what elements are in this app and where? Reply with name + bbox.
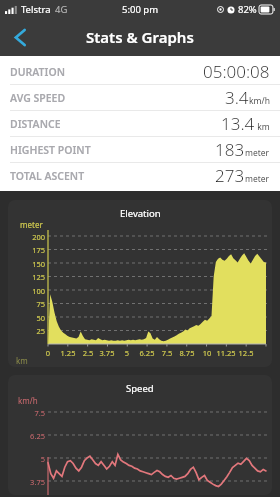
staticText: 82% [238,3,257,16]
staticText: DURATION [10,65,66,79]
button[interactable]: TOTAL ASCENT [0,163,280,188]
staticText: 8.75 [176,348,198,358]
staticText: 12.5 [235,348,257,358]
button[interactable]: Back [0,18,40,56]
staticText: 3.75 [14,477,45,487]
staticText: 25 [14,326,45,336]
staticText: 125 [14,272,45,282]
staticText: 6.25 [14,431,45,441]
staticText: meter [245,173,270,185]
button[interactable]: Elevation [8,200,272,367]
staticText: 150 [14,259,45,269]
staticText: Speed [126,382,154,395]
staticText: km/h [249,95,270,107]
staticText: HIGHEST POINT [10,143,91,157]
staticText: DISTANCE [10,117,61,131]
button[interactable]: DISTANCE [0,111,280,136]
staticText: 5 [14,454,45,464]
staticText: Stats & Graphs [86,27,194,47]
staticText: Elevation [120,207,161,220]
staticText: 11.25 [215,348,237,358]
staticText: km [255,121,270,133]
staticText: 3.75 [96,348,118,358]
staticText: 5 [116,348,138,358]
button[interactable]: HIGHEST POINT [0,137,280,162]
staticText: 0 [37,348,59,358]
button[interactable]: AVG SPEED [0,85,280,110]
staticText: 5:00 pm [122,3,159,16]
staticText: 6.25 [136,348,158,358]
staticText: km [16,355,28,366]
staticText: meter [245,147,270,159]
staticText: 175 [14,245,45,255]
staticText: Telstra [21,3,51,16]
staticText: meter [20,219,43,230]
staticText: km/h [18,395,38,406]
staticText: 3.4 [225,86,249,109]
staticText: 13.4 [221,112,255,135]
staticText: AVG SPEED [10,91,66,105]
staticText: 200 [14,232,45,242]
staticText: 10 [196,348,218,358]
staticText: 100 [14,286,45,296]
button[interactable]: DURATION [0,59,280,84]
button[interactable]: Speed [8,375,272,495]
staticText: TOTAL ASCENT [10,169,85,183]
staticText: 183 [215,138,245,161]
staticText: 7.5 [156,348,178,358]
staticText: 4G [55,3,68,16]
staticText: 2.5 [77,348,99,358]
staticText: 05:00:08 [203,60,270,83]
staticText: 75 [14,299,45,309]
staticText: 273 [215,164,245,187]
staticText: 1.25 [57,348,79,358]
staticText: 7.5 [14,408,45,418]
staticText: 50 [14,313,45,323]
